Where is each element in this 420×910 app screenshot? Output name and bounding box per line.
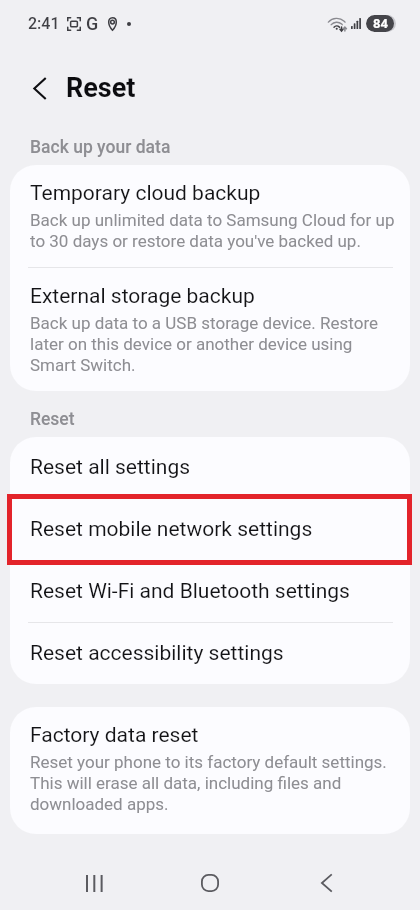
button[interactable]: External storage backup	[10, 268, 410, 391]
staticText: Back up your data	[30, 137, 171, 158]
button[interactable]: Reset all settings	[10, 437, 410, 498]
button[interactable]: Reset mobile network settings	[10, 499, 410, 560]
staticText: Reset Wi-Fi and Bluetooth settings	[30, 579, 350, 604]
staticText: Reset all settings	[30, 455, 191, 480]
staticText: Reset mobile network settings	[30, 517, 313, 542]
staticText: Reset your phone to its factory default …	[30, 752, 387, 814]
staticText: Back up unlimited data to Samsung Cloud …	[30, 210, 395, 251]
button[interactable]: Reset accessibility settings	[10, 623, 410, 684]
button[interactable]: Home	[188, 861, 232, 905]
button[interactable]: Back	[304, 861, 348, 905]
button[interactable]: Navigate up	[22, 71, 56, 105]
staticText: 84	[373, 16, 388, 31]
staticText: Back up data to a USB storage device. Re…	[30, 313, 379, 375]
staticText: External storage backup	[30, 284, 255, 309]
button[interactable]: Recent apps	[72, 861, 116, 905]
staticText: G	[86, 13, 99, 34]
staticText: Reset	[30, 409, 75, 430]
button[interactable]: Factory data reset	[10, 707, 410, 834]
button[interactable]: Temporary cloud backup	[10, 165, 410, 267]
staticText: 2:41	[28, 14, 60, 33]
staticText: Factory data reset	[30, 723, 199, 748]
staticText: Reset	[66, 72, 136, 104]
staticText: Temporary cloud backup	[30, 181, 261, 206]
button[interactable]: Reset Wi-Fi and Bluetooth settings	[10, 561, 410, 622]
staticText: Reset accessibility settings	[30, 641, 284, 666]
